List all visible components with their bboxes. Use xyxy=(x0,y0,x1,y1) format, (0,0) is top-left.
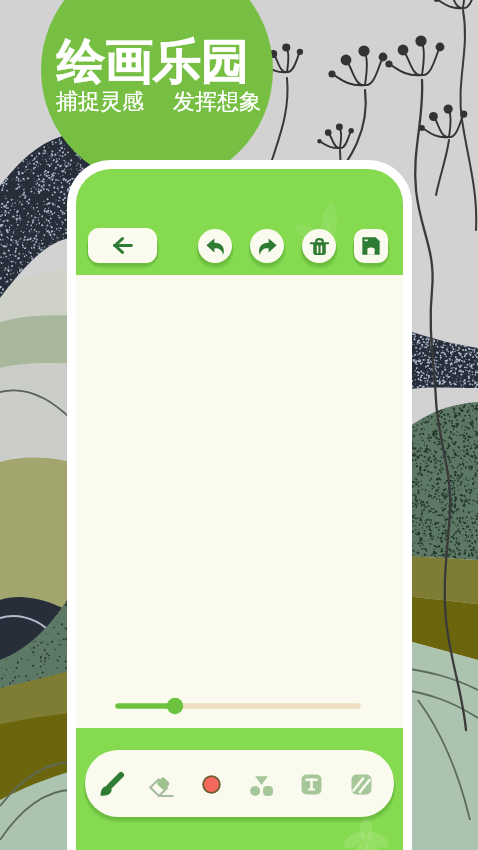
staticText: 捕捉灵感 xyxy=(56,88,144,116)
button[interactable]: Delete xyxy=(302,229,336,263)
button[interactable]: Eraser xyxy=(140,763,182,805)
button[interactable]: Text xyxy=(290,763,332,805)
button[interactable]: Undo xyxy=(198,229,232,263)
button[interactable]: Fill xyxy=(340,763,382,805)
button[interactable]: Save xyxy=(354,229,388,263)
staticText: 绘画乐园 xyxy=(56,33,248,93)
button[interactable]: Back xyxy=(88,228,157,263)
button[interactable]: Shapes xyxy=(240,763,282,805)
button[interactable]: Color xyxy=(190,763,232,805)
staticText: 发挥想象 xyxy=(173,88,261,116)
button[interactable]: Brush xyxy=(90,763,132,805)
button[interactable]: Redo xyxy=(250,229,284,263)
